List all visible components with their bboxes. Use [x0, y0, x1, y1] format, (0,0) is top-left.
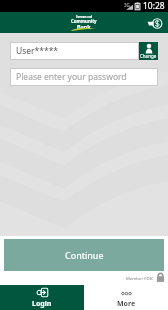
staticText: Please enter your password — [16, 71, 127, 83]
button[interactable]: Change — [139, 42, 158, 60]
staticText: 3G — [124, 2, 130, 8]
staticText: Login — [32, 299, 52, 309]
button[interactable]: Rates and offers — [144, 13, 164, 33]
button[interactable]: Continue — [4, 239, 164, 271]
staticText: Farmers and — [76, 15, 93, 19]
button[interactable]: User***** — [10, 42, 139, 60]
button[interactable]: More — [84, 285, 168, 310]
staticText: Continue — [65, 249, 104, 261]
staticText: More — [117, 299, 136, 309]
staticText: Bank — [77, 23, 91, 30]
staticText: Community — [71, 18, 97, 24]
staticText: Member FDIC — [126, 275, 154, 281]
staticText: Change — [140, 53, 157, 59]
staticText: 10:28 — [143, 0, 165, 12]
button[interactable]: Login — [0, 285, 84, 310]
button[interactable]: Please enter your password — [10, 68, 158, 86]
staticText: User***** — [16, 45, 59, 57]
